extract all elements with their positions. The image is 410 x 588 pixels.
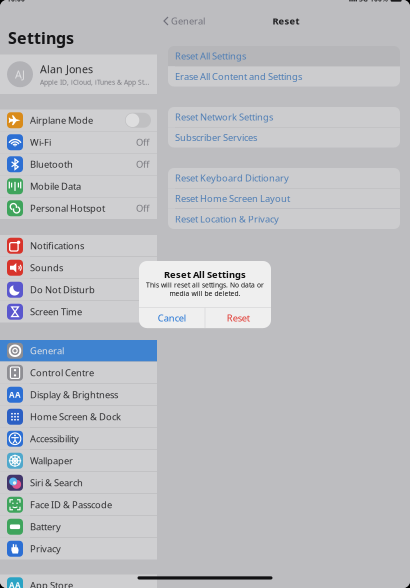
staticText: Reset Network Settings [175, 111, 273, 123]
staticText: Battery [30, 521, 61, 533]
button[interactable]: Bluetooth [0, 153, 157, 175]
staticText: Home Screen & Dock [30, 411, 121, 423]
button[interactable]: Mobile Data [0, 175, 157, 197]
button[interactable]: AJ [0, 54, 157, 94]
staticText: Reset All Settings [164, 268, 246, 281]
staticText: 10:00 [7, 0, 25, 3]
button[interactable]: Wallpaper [0, 450, 157, 471]
button[interactable]: Personal Hotspot [0, 197, 157, 219]
staticText: Mobile Data [30, 180, 81, 192]
staticText: Screen Time [30, 306, 82, 318]
button[interactable]: Cancel [139, 308, 205, 328]
button[interactable]: Wi-Fi [0, 131, 157, 153]
button[interactable]: Reset All Settings [168, 46, 400, 66]
staticText: Off [136, 158, 149, 170]
staticText: Face ID & Passcode [30, 499, 112, 511]
staticText: Settings [8, 27, 74, 48]
staticText: Notifications [30, 240, 84, 252]
staticText: Reset [227, 312, 250, 324]
button[interactable]: Reset Location & Privacy [168, 209, 400, 229]
button[interactable]: Subscriber Services [168, 127, 400, 147]
staticText: Personal Hotspot [30, 202, 105, 214]
staticText: Reset All Settings [175, 50, 246, 62]
button[interactable]: AA [0, 384, 157, 405]
staticText: Off [136, 136, 149, 148]
staticText: Airplane Mode [30, 114, 93, 126]
staticText: Bluetooth [30, 158, 73, 170]
staticText: Subscriber Services [175, 131, 257, 144]
button[interactable]: Airplane Mode [0, 109, 157, 131]
staticText: Wi-Fi [30, 136, 51, 148]
button[interactable]: Erase All Content and Settings [168, 66, 400, 86]
staticText: Cancel [158, 312, 186, 324]
button[interactable]: Siri & Search [0, 472, 157, 493]
staticText: Siri & Search [30, 477, 83, 489]
staticText: AJ [15, 67, 25, 81]
button[interactable]: Reset Home Screen Layout [168, 188, 400, 208]
staticText: Accessibility [30, 433, 79, 445]
staticText: Reset Location & Privacy [175, 213, 279, 225]
button[interactable]: Do Not Disturb [0, 279, 157, 300]
button[interactable]: Face ID & Passcode [0, 494, 157, 515]
staticText: General [30, 345, 64, 357]
staticText: General [171, 15, 205, 27]
staticText: Reset Home Screen Layout [175, 192, 290, 205]
button[interactable]: AA [0, 574, 157, 588]
staticText: Apple ID, iCloud, iTunes & App St… [40, 78, 149, 87]
button[interactable]: Reset [205, 308, 271, 328]
button[interactable]: Home Screen & Dock [0, 406, 157, 427]
staticText: media will be deleted. [169, 289, 240, 298]
button[interactable]: Reset Keyboard Dictionary [168, 168, 400, 188]
staticText: Sounds [30, 262, 63, 274]
staticText: Wallpaper [30, 455, 73, 467]
button[interactable]: Notifications [0, 235, 157, 256]
staticText: Reset Keyboard Dictionary [175, 172, 289, 184]
staticText: Off [136, 202, 149, 214]
staticText: Do Not Disturb [30, 284, 95, 296]
button[interactable]: Reset Network Settings [168, 107, 400, 127]
staticText: AA [9, 389, 21, 400]
staticText: Control Centre [30, 367, 94, 379]
button[interactable]: Privacy [0, 538, 157, 559]
staticText: Reset [272, 15, 299, 27]
button[interactable]: Control Centre [0, 362, 157, 383]
button[interactable]: General [0, 340, 157, 361]
staticText: App Store [30, 579, 73, 588]
button[interactable]: Screen Time [0, 301, 157, 322]
staticText: 3G 100% [359, 0, 388, 3]
staticText: This will reset all settings. No data or [146, 281, 264, 289]
button[interactable]: Battery [0, 516, 157, 537]
button[interactable]: General [157, 9, 211, 33]
staticText: Alan Jones [40, 62, 93, 76]
staticText: Display & Brightness [30, 389, 118, 401]
staticText: Erase All Content and Settings [175, 70, 302, 83]
button[interactable]: Accessibility [0, 428, 157, 449]
staticText: AA [9, 580, 21, 588]
button[interactable]: Sounds [0, 257, 157, 278]
staticText: Privacy [30, 543, 61, 555]
